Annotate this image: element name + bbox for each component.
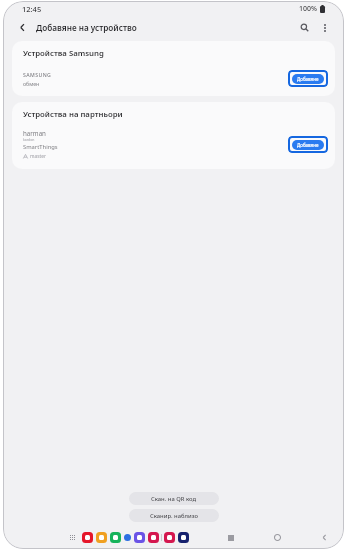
staticText: SmartThings — [23, 143, 58, 151]
staticText: harman — [23, 129, 46, 137]
staticText: Скан. на QR код — [151, 495, 197, 503]
button[interactable]: SmartThings — [178, 532, 189, 543]
staticText: 12:45 — [22, 4, 42, 14]
button[interactable]: Samsung Notes — [82, 532, 93, 543]
button[interactable]: More options — [316, 19, 333, 36]
button[interactable]: Recents — [225, 532, 236, 543]
staticText: SAMSUNG — [23, 71, 52, 78]
button[interactable]: Search — [296, 19, 313, 36]
button[interactable]: My Files — [96, 532, 107, 543]
staticText: kardon — [23, 137, 35, 142]
button[interactable]: Phone — [110, 532, 121, 543]
button[interactable]: Home — [272, 532, 283, 543]
button[interactable]: Скан. на QR код — [129, 492, 219, 505]
button[interactable]: Добавяне — [288, 70, 328, 87]
staticText: 100% — [299, 4, 317, 14]
staticText: Сканир. наблизо — [150, 512, 199, 520]
button[interactable]: Добавяне — [288, 136, 328, 153]
button[interactable]: All apps — [67, 532, 78, 543]
button[interactable]: Internet — [134, 532, 145, 543]
button[interactable]: Settings — [164, 532, 175, 543]
button[interactable]: Messages — [124, 534, 131, 541]
staticText: Добавяне на устройство — [36, 22, 137, 33]
staticText: master — [30, 153, 46, 160]
button[interactable]: Back — [319, 532, 330, 543]
button[interactable]: Back — [14, 19, 31, 36]
staticText: обмен — [23, 80, 40, 87]
button[interactable]: Gallery — [148, 532, 159, 543]
button[interactable]: Сканир. наблизо — [129, 509, 219, 522]
staticText: Добавяне — [297, 76, 319, 82]
staticText: Добавяне — [297, 142, 319, 148]
staticText: Устройства на партньори — [23, 109, 123, 120]
staticText: Устройства Samsung — [23, 48, 104, 59]
